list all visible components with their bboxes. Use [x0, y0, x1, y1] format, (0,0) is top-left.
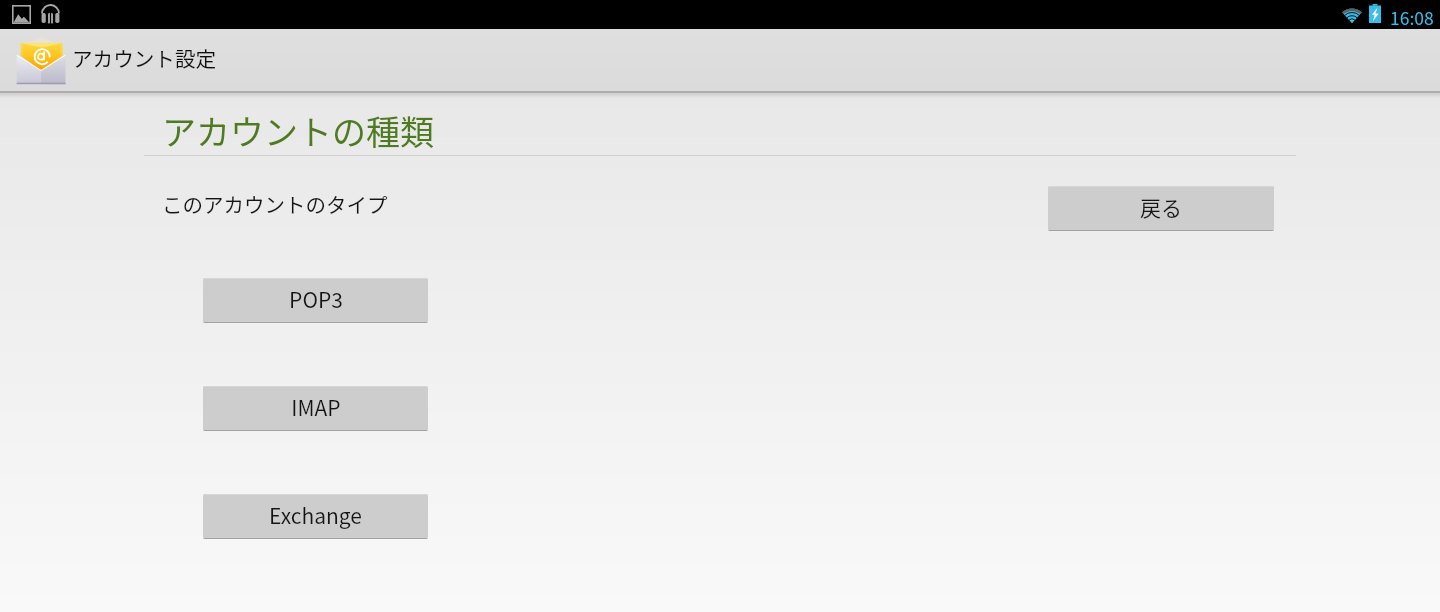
other: Battery charging — [1369, 4, 1381, 23]
staticText: IMAP — [291, 392, 341, 422]
other: Headphones — [41, 4, 60, 24]
staticText: 16:08 — [1390, 5, 1434, 30]
other: Screenshot — [12, 5, 31, 24]
staticText: アカウント設定 — [72, 43, 217, 73]
staticText: このアカウントのタイプ — [162, 189, 388, 219]
button[interactable]: アカウント設定 — [0, 29, 229, 91]
button[interactable]: 戻る — [1048, 186, 1274, 231]
staticText: POP3 — [289, 284, 343, 314]
button[interactable]: IMAP — [203, 386, 428, 431]
button[interactable]: POP3 — [203, 278, 428, 323]
staticText: 戻る — [1140, 192, 1182, 222]
staticText: アカウントの種類 — [162, 106, 434, 155]
staticText: Exchange — [269, 500, 362, 530]
other: Wi-Fi — [1340, 5, 1364, 23]
button[interactable]: Exchange — [203, 494, 428, 539]
